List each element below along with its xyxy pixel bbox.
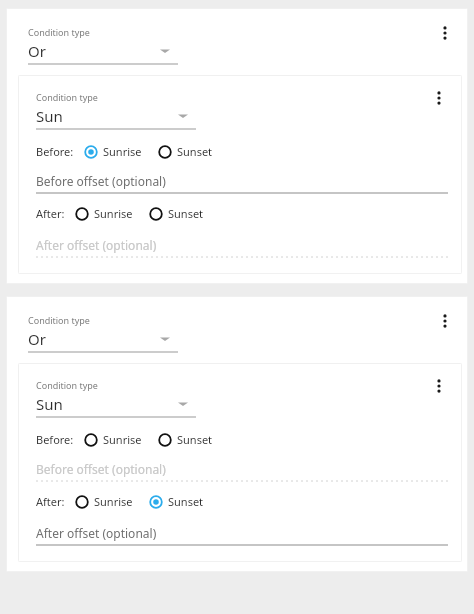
- staticText: Before offset (optional): [36, 173, 166, 189]
- button[interactable]: Sunrise: [84, 432, 142, 447]
- staticText: Sunrise: [94, 494, 133, 509]
- button[interactable]: Sunrise: [75, 494, 133, 509]
- button[interactable]: More options: [428, 375, 450, 397]
- button[interactable]: Before offset (optional): [36, 173, 448, 194]
- button[interactable]: Before offset (optional): [36, 461, 448, 482]
- staticText: Sunrise: [103, 144, 142, 159]
- staticText: After:: [36, 494, 65, 509]
- button[interactable]: Condition type: [36, 379, 196, 418]
- staticText: Sunset: [177, 144, 213, 159]
- staticText: Condition type: [36, 379, 98, 391]
- staticText: Sun: [36, 394, 63, 414]
- button[interactable]: Condition type: [36, 91, 196, 130]
- staticText: Sunset: [168, 206, 204, 221]
- staticText: Condition type: [28, 26, 90, 38]
- button[interactable]: Sunset: [158, 432, 213, 447]
- staticText: Condition type: [28, 314, 90, 326]
- staticText: Sunrise: [94, 206, 133, 221]
- button[interactable]: After offset (optional): [36, 237, 448, 258]
- staticText: Sunset: [168, 494, 204, 509]
- button[interactable]: After offset (optional): [36, 525, 448, 546]
- button[interactable]: Condition type: [28, 26, 178, 65]
- button[interactable]: More options: [434, 22, 456, 44]
- staticText: Sunrise: [103, 432, 142, 447]
- staticText: After:: [36, 206, 65, 221]
- staticText: Or: [28, 329, 46, 349]
- staticText: After offset (optional): [36, 237, 157, 253]
- button[interactable]: Sunrise: [75, 206, 133, 221]
- button[interactable]: Sunset: [158, 144, 213, 159]
- staticText: Before:: [36, 144, 74, 159]
- staticText: After offset (optional): [36, 525, 157, 541]
- staticText: Before:: [36, 432, 74, 447]
- button[interactable]: Condition type: [28, 314, 178, 353]
- button[interactable]: More options: [434, 310, 456, 332]
- staticText: Before offset (optional): [36, 461, 166, 477]
- button[interactable]: More options: [428, 87, 450, 109]
- staticText: Sun: [36, 106, 63, 126]
- button[interactable]: Sunrise: [84, 144, 142, 159]
- staticText: Or: [28, 41, 46, 61]
- button[interactable]: Sunset: [149, 206, 204, 221]
- staticText: Sunset: [177, 432, 213, 447]
- button[interactable]: Sunset: [149, 494, 204, 509]
- staticText: Condition type: [36, 91, 98, 103]
